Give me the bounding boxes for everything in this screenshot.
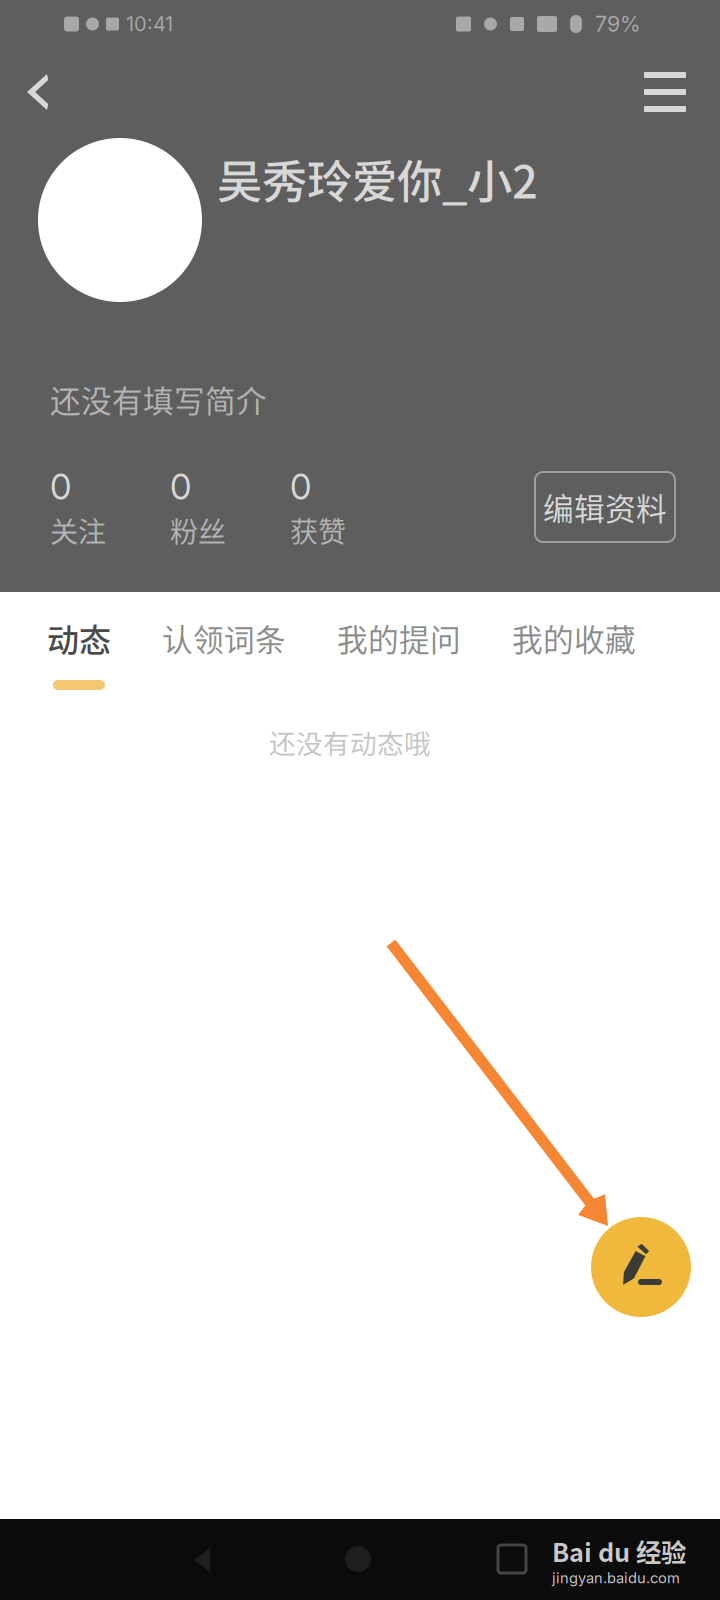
staticText: 动态 — [47, 615, 111, 661]
button[interactable]: 动态 — [47, 592, 111, 704]
staticText: 编辑资料 — [543, 485, 667, 529]
staticText: 79% — [595, 11, 641, 37]
staticText: 还没有填写简介 — [50, 377, 267, 421]
staticText: 关注 — [50, 510, 106, 550]
staticText: jingyan.baidu.com — [552, 1569, 680, 1587]
button[interactable]: Back — [0, 54, 75, 130]
button[interactable]: 认领词条 — [162, 592, 286, 704]
staticText: 还没有动态哦 — [269, 723, 431, 761]
button[interactable]: 我的提问 — [337, 592, 461, 704]
button[interactable]: 0 — [50, 466, 170, 546]
button[interactable]: Home — [328, 1529, 388, 1589]
staticText: 0 — [290, 466, 311, 508]
staticText: 粉丝 — [170, 510, 226, 550]
button[interactable]: Compose — [591, 1217, 691, 1317]
button[interactable]: 编辑资料 — [535, 472, 675, 542]
staticText: 认领词条 — [162, 616, 286, 660]
button[interactable]: 我的收藏 — [512, 592, 636, 704]
button[interactable]: 0 — [290, 466, 410, 546]
staticText: 我的收藏 — [512, 616, 636, 660]
staticText: 0 — [50, 466, 71, 508]
staticText: 吴秀玲爱你_小2 — [217, 146, 538, 212]
button[interactable]: 0 — [170, 466, 290, 546]
button[interactable]: Back — [190, 1530, 250, 1590]
staticText: 0 — [170, 466, 191, 508]
staticText: 10:41 — [126, 12, 173, 36]
button[interactable]: Recents — [482, 1529, 542, 1589]
button[interactable]: Menu — [627, 54, 703, 130]
staticText: 我的提问 — [337, 616, 461, 660]
staticText: 获赞 — [290, 510, 346, 550]
staticText: Bai du 经验 — [552, 1533, 686, 1569]
